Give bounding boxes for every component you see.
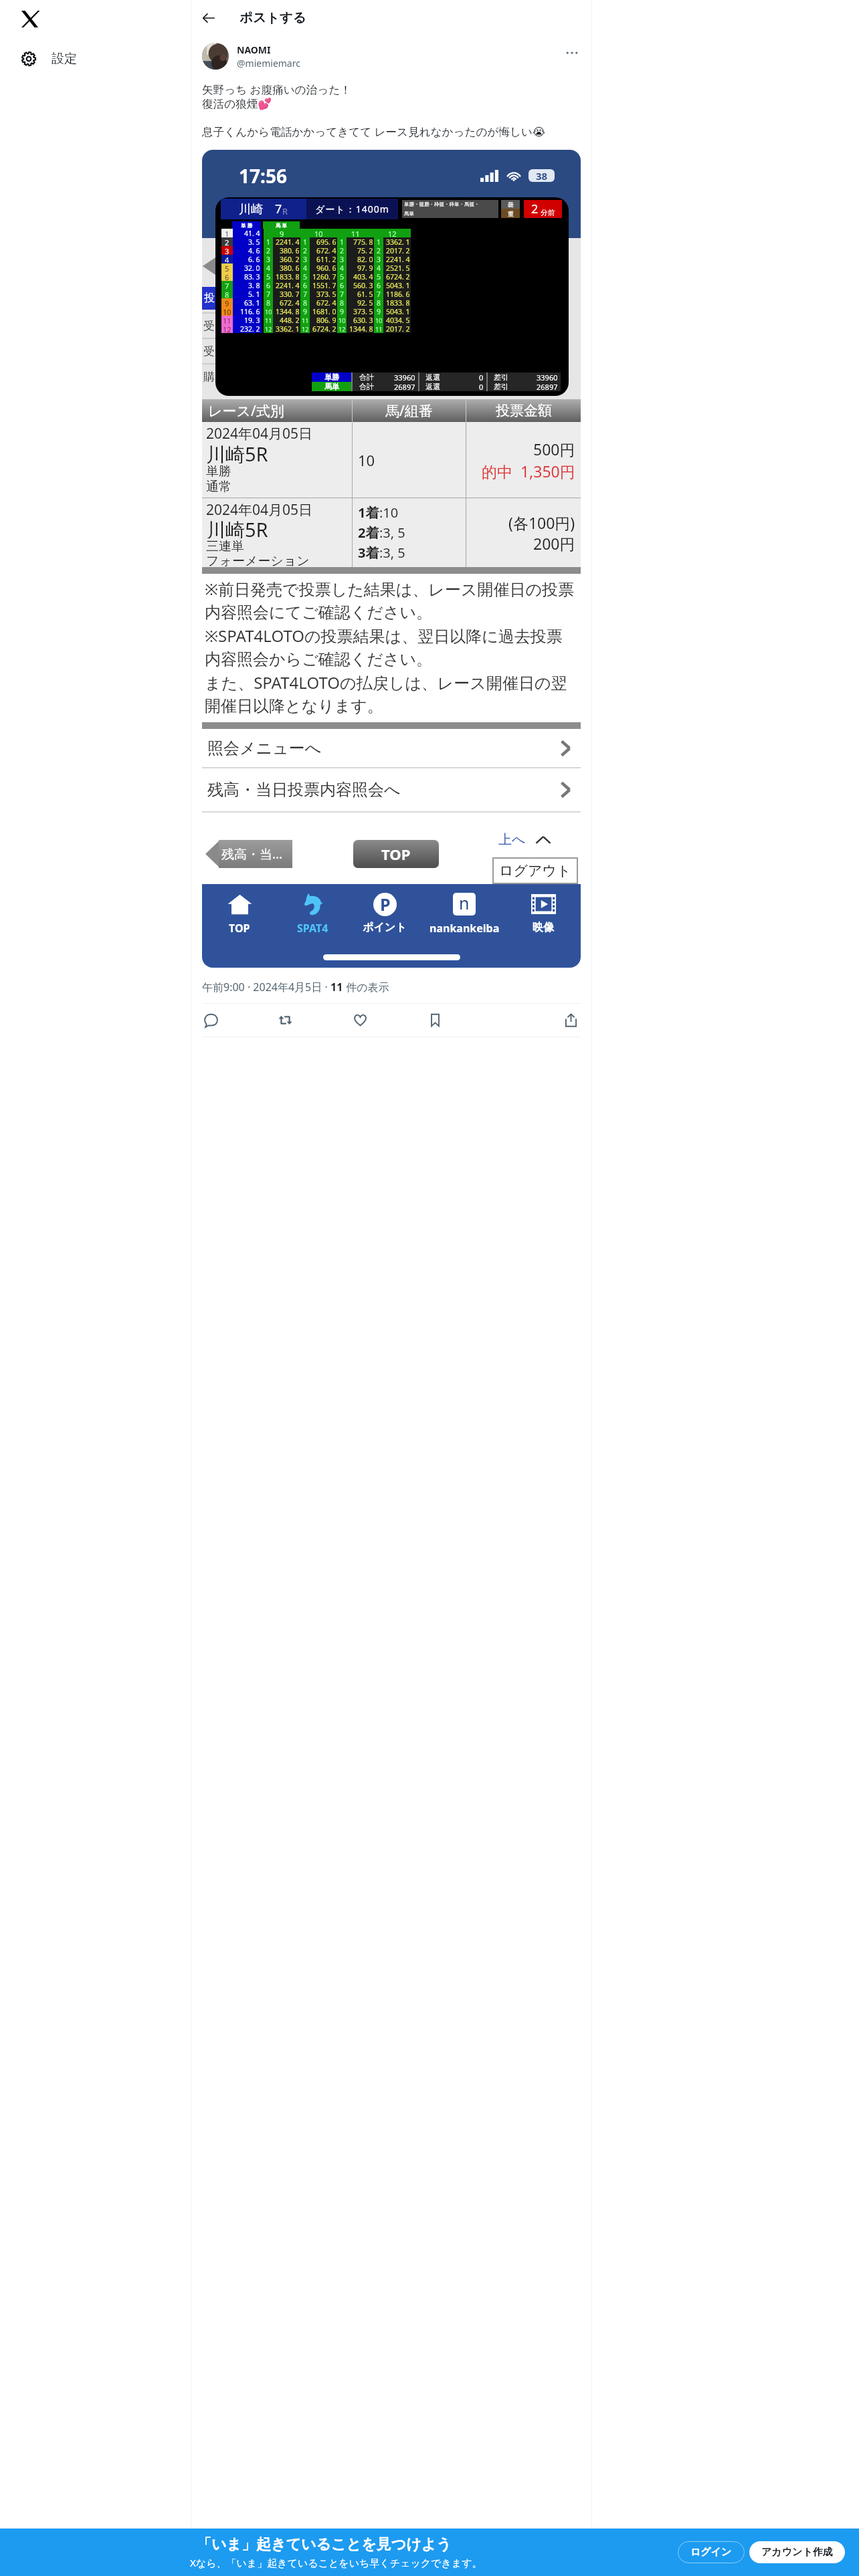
button[interactable]: Repost <box>278 1004 353 1037</box>
button[interactable]: Share <box>503 1004 578 1037</box>
staticText: P <box>380 893 391 916</box>
button[interactable]: 残高・当日投票内容照会へ <box>202 768 581 811</box>
staticText: TOP <box>229 921 250 936</box>
staticText: ※前日発売で投票した結果は、レース開催日の投票 <box>205 578 575 600</box>
button[interactable]: Post image <box>202 150 581 968</box>
staticText: 9 <box>280 229 284 237</box>
staticText: 12 <box>223 324 231 333</box>
staticText: 12 <box>339 325 346 333</box>
button[interactable]: ログアウト <box>492 857 578 884</box>
staticText: 馬 単 <box>276 222 287 229</box>
button[interactable]: 上へ <box>498 831 551 848</box>
staticText: 川崎5R <box>206 516 268 538</box>
staticText: (各100円) <box>508 512 575 533</box>
button[interactable]: 設定 <box>14 41 92 76</box>
button[interactable]: SPAT4 <box>282 892 343 936</box>
staticText: レース/式別 <box>208 401 284 421</box>
staticText: 単勝 <box>324 372 339 382</box>
staticText: 41. 4 <box>244 229 260 237</box>
staticText: 8 <box>377 298 381 307</box>
staticText: 8 <box>225 290 229 298</box>
staticText: 9 <box>340 307 345 316</box>
button[interactable]: Back <box>197 7 220 29</box>
staticText: 3 <box>225 246 229 255</box>
staticText: 6 <box>266 281 271 290</box>
staticText: ※SPAT4LOTOの投票結果は、翌日以降に過去投票 <box>205 625 563 647</box>
staticText: NAOMI <box>237 43 271 56</box>
staticText: また、SPAT4LOTOの払戻しは、レース開催日の翌 <box>205 671 567 693</box>
staticText: 17:56 <box>239 163 287 189</box>
staticText: 500円 <box>533 439 575 459</box>
staticText: 775. 8 <box>353 237 373 246</box>
staticText: 6 <box>225 272 229 281</box>
staticText: SPAT4 <box>297 921 328 936</box>
button[interactable]: More <box>562 43 582 63</box>
staticText: 設定 <box>52 51 77 67</box>
staticText: 5 <box>266 272 271 281</box>
staticText: 4. 6 <box>248 246 260 255</box>
staticText: 83. 3 <box>244 272 260 281</box>
staticText: 7 <box>303 290 308 298</box>
staticText: 馬単 <box>324 382 339 391</box>
button[interactable]: X home <box>13 2 47 36</box>
staticText: 1833. 8 <box>386 298 410 307</box>
button[interactable]: n <box>427 892 502 936</box>
staticText: 1 <box>225 229 229 237</box>
staticText: 単 勝 <box>241 222 252 229</box>
staticText: 差引 <box>494 372 508 382</box>
button[interactable]: P <box>354 892 415 934</box>
button[interactable]: Like <box>353 1004 428 1037</box>
button[interactable]: 映像 <box>512 892 574 934</box>
staticText: 1344. 8 <box>276 307 300 316</box>
staticText: 復活の狼煙💕 <box>202 97 272 111</box>
staticText: 6724. 2 <box>312 324 337 333</box>
staticText: 116. 6 <box>240 307 260 316</box>
staticText: 97. 9 <box>357 263 373 272</box>
staticText: ポイント <box>363 921 407 934</box>
staticText: 投票金額 <box>496 402 552 419</box>
button[interactable]: 照会メニューへ <box>202 729 581 767</box>
staticText: 1 <box>303 237 308 246</box>
staticText: 内容照会からご確認ください。 <box>205 649 432 669</box>
staticText: 695. 6 <box>316 237 337 246</box>
staticText: ダート：1400m <box>315 203 389 215</box>
staticText: 6 <box>340 281 345 290</box>
button[interactable]: TOP <box>209 892 270 936</box>
staticText: 投 <box>204 292 215 305</box>
staticText: 12 <box>265 325 272 333</box>
staticText: 6724. 2 <box>386 272 410 281</box>
staticText: 差引 <box>494 382 508 391</box>
staticText: 川崎 <box>239 202 263 217</box>
staticText: 2241. 4 <box>276 281 300 290</box>
staticText: 5 <box>340 272 345 281</box>
button[interactable]: アカウント作成 <box>749 2541 845 2563</box>
staticText: 的中 1,350円 <box>482 461 575 481</box>
staticText: 33960 <box>537 372 558 382</box>
button[interactable]: ログイン <box>678 2541 745 2563</box>
staticText: @miemiemarc <box>237 57 300 70</box>
staticText: 馬/組番 <box>385 401 433 421</box>
staticText: 1551. 7 <box>312 281 337 290</box>
staticText: 7 <box>225 281 229 290</box>
staticText: 360. 2 <box>280 255 300 263</box>
button[interactable]: TOP <box>353 840 439 868</box>
staticText: 200円 <box>533 533 575 554</box>
staticText: 2024年04月05日 <box>206 500 313 516</box>
button[interactable]: Bookmark <box>428 1004 503 1037</box>
staticText: 2 <box>377 246 381 255</box>
staticText: 232. 2 <box>240 324 260 333</box>
staticText: 10 <box>265 308 272 316</box>
staticText: 返還 <box>425 382 440 391</box>
staticText: ログイン <box>690 2546 732 2559</box>
button[interactable]: Reply <box>204 1004 278 1037</box>
staticText: 75. 2 <box>357 246 373 255</box>
staticText: 1833. 8 <box>276 272 300 281</box>
button[interactable]: Profile photo <box>202 43 229 70</box>
button[interactable]: 残高・当… <box>205 840 292 868</box>
staticText: 2 <box>225 237 229 246</box>
staticText: 7 <box>340 290 345 298</box>
staticText: 11 <box>351 229 360 237</box>
staticText: 「いま」起きていることを見つけよう <box>197 2535 452 2554</box>
staticText: 川崎5R <box>206 441 268 463</box>
staticText: 8 <box>303 298 308 307</box>
